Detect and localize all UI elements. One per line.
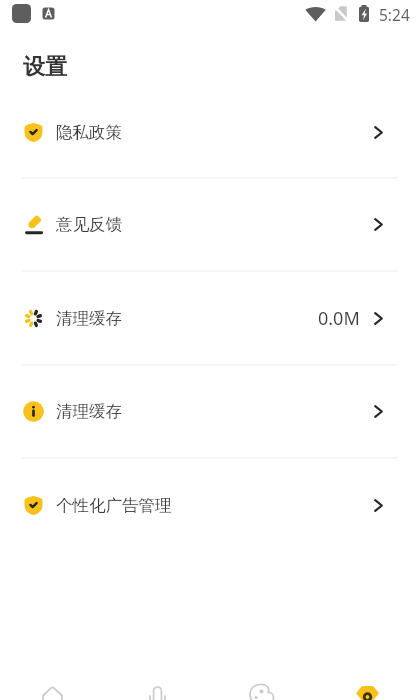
button[interactable]: 隐私政策 <box>0 84 420 178</box>
staticText: 设置 <box>23 53 67 81</box>
staticText: 个性化广告管理 <box>56 495 172 516</box>
staticText: 意见反馈 <box>56 214 122 235</box>
button[interactable]: 清理缓存 <box>0 270 420 364</box>
button[interactable]: 清理缓存 <box>0 364 420 457</box>
button[interactable]: Settings <box>315 658 420 700</box>
staticText: 清理缓存 <box>56 308 122 329</box>
staticText: 0.0M <box>318 306 360 331</box>
staticText: 清理缓存 <box>56 401 122 422</box>
button[interactable]: 个性化广告管理 <box>0 457 420 551</box>
button[interactable]: Home <box>0 658 105 700</box>
button[interactable]: Voice <box>105 658 210 700</box>
button[interactable]: Discover <box>210 658 315 700</box>
staticText: 隐私政策 <box>56 122 122 143</box>
button[interactable]: 意见反馈 <box>0 177 420 270</box>
staticText: 5:24 <box>379 4 410 25</box>
